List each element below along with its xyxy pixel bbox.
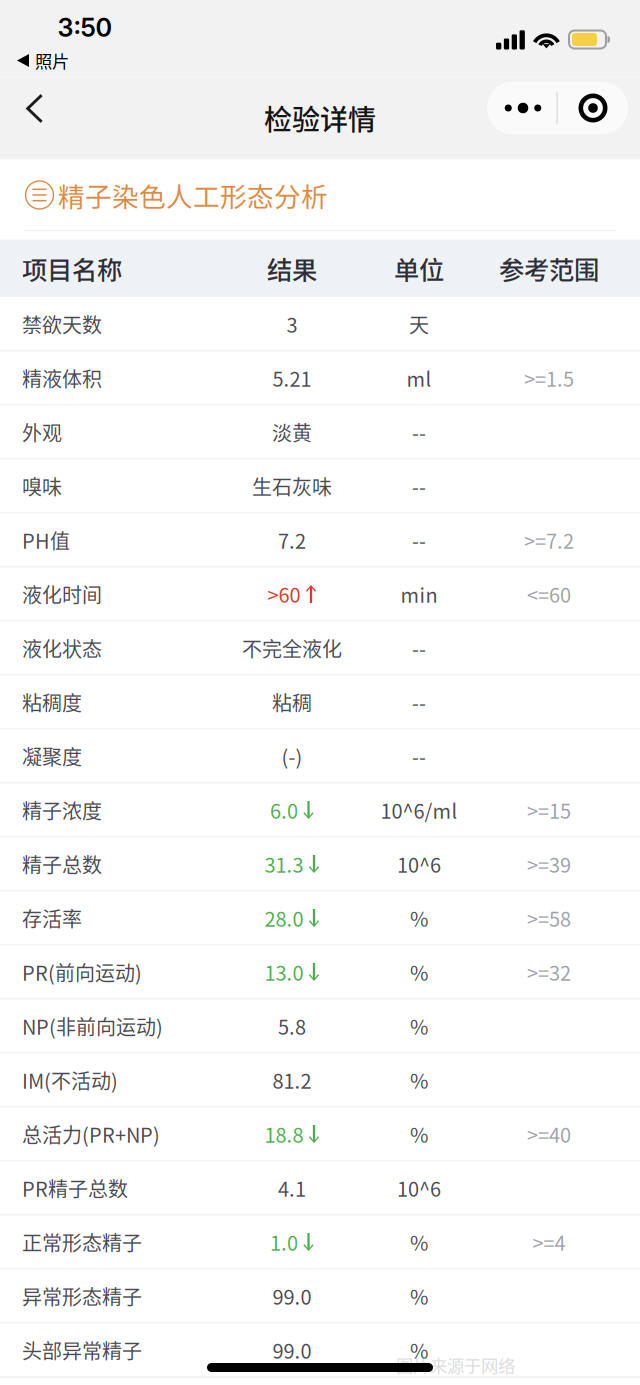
staticText: 10^6/ml bbox=[380, 795, 457, 824]
staticText: >=39 bbox=[527, 849, 571, 878]
staticText: 28.0 bbox=[264, 903, 303, 932]
staticText: ml bbox=[406, 363, 431, 392]
staticText: -- bbox=[412, 741, 426, 770]
staticText: 31.3 bbox=[264, 849, 303, 878]
staticText: 7.2 bbox=[278, 525, 306, 554]
staticText: 5.21 bbox=[272, 363, 311, 392]
staticText: NP(非前向运动) bbox=[22, 1011, 163, 1040]
staticText: 3:50 bbox=[57, 12, 112, 43]
staticText: 参考范围 bbox=[499, 250, 599, 287]
staticText: PR(前向运动) bbox=[22, 957, 142, 986]
staticText: >=40 bbox=[527, 1119, 571, 1148]
staticText: 外观 bbox=[22, 417, 62, 446]
staticText: IM(不活动) bbox=[22, 1065, 118, 1094]
staticText: 天 bbox=[409, 309, 429, 338]
staticText: 10^6 bbox=[397, 1173, 441, 1202]
staticText: -- bbox=[412, 633, 426, 662]
staticText: -- bbox=[412, 687, 426, 716]
staticText: 照片 bbox=[35, 48, 69, 73]
staticText: -- bbox=[412, 417, 426, 446]
staticText: 异常形态精子 bbox=[22, 1281, 142, 1310]
button[interactable]: Menu and close mini program bbox=[487, 81, 628, 134]
staticText: >=7.2 bbox=[524, 525, 574, 554]
staticText: 嗅味 bbox=[22, 471, 62, 500]
staticText: 禁欲天数 bbox=[22, 309, 102, 338]
staticText: PH值 bbox=[22, 525, 70, 554]
staticText: % bbox=[410, 1335, 428, 1364]
staticText: >=4 bbox=[532, 1227, 565, 1256]
staticText: 液化状态 bbox=[22, 633, 102, 662]
staticText: 不完全液化 bbox=[242, 633, 342, 662]
staticText: 13.0 bbox=[264, 957, 303, 986]
staticText: 正常形态精子 bbox=[22, 1227, 142, 1256]
staticText: 液化时间 bbox=[22, 579, 102, 608]
staticText: PR精子总数 bbox=[22, 1173, 128, 1202]
staticText: 淡黄 bbox=[272, 417, 312, 446]
staticText: 单位 bbox=[394, 250, 444, 287]
staticText: 精子总数 bbox=[22, 849, 102, 878]
staticText: 粘稠 bbox=[272, 687, 312, 716]
staticText: (-) bbox=[281, 741, 302, 770]
staticText: % bbox=[410, 903, 428, 932]
staticText: 1.0 bbox=[270, 1227, 298, 1256]
staticText: <=60 bbox=[527, 579, 571, 608]
staticText: 总活力(PR+NP) bbox=[22, 1119, 160, 1148]
staticText: 项目名称 bbox=[22, 250, 122, 287]
staticText: % bbox=[410, 1119, 428, 1148]
staticText: 精子浓度 bbox=[22, 795, 102, 824]
staticText: % bbox=[410, 957, 428, 986]
staticText: min bbox=[400, 579, 437, 608]
staticText: >=32 bbox=[527, 957, 571, 986]
staticText: -- bbox=[412, 525, 426, 554]
button[interactable]: 照片 bbox=[16, 47, 136, 73]
staticText: 18.8 bbox=[264, 1119, 303, 1148]
button[interactable]: Back bbox=[3, 78, 65, 138]
staticText: -- bbox=[412, 471, 426, 500]
staticText: % bbox=[410, 1281, 428, 1310]
staticText: 凝聚度 bbox=[22, 741, 82, 770]
staticText: 存活率 bbox=[22, 903, 82, 932]
staticText: % bbox=[410, 1065, 428, 1094]
staticText: >60 bbox=[267, 579, 300, 608]
staticText: 6.0 bbox=[270, 795, 298, 824]
staticText: 5.8 bbox=[278, 1011, 306, 1040]
staticText: >=1.5 bbox=[524, 363, 574, 392]
staticText: 4.1 bbox=[278, 1173, 306, 1202]
staticText: >=15 bbox=[527, 795, 571, 824]
staticText: % bbox=[410, 1227, 428, 1256]
staticText: 99.0 bbox=[272, 1335, 311, 1364]
staticText: 精子染色人工形态分析 bbox=[58, 176, 328, 214]
staticText: 精液体积 bbox=[22, 363, 102, 392]
staticText: 结果 bbox=[267, 250, 317, 287]
staticText: 生石灰味 bbox=[252, 471, 332, 500]
staticText: 图片来源于网络 bbox=[396, 1352, 515, 1378]
staticText: 10^6 bbox=[397, 849, 441, 878]
staticText: >=58 bbox=[527, 903, 571, 932]
staticText: 粘稠度 bbox=[22, 687, 82, 716]
staticText: 99.0 bbox=[272, 1281, 311, 1310]
staticText: % bbox=[410, 1011, 428, 1040]
staticText: 3 bbox=[286, 309, 297, 338]
staticText: 检验详情 bbox=[264, 98, 376, 138]
staticText: 81.2 bbox=[272, 1065, 311, 1094]
staticText: 头部异常精子 bbox=[22, 1335, 142, 1364]
